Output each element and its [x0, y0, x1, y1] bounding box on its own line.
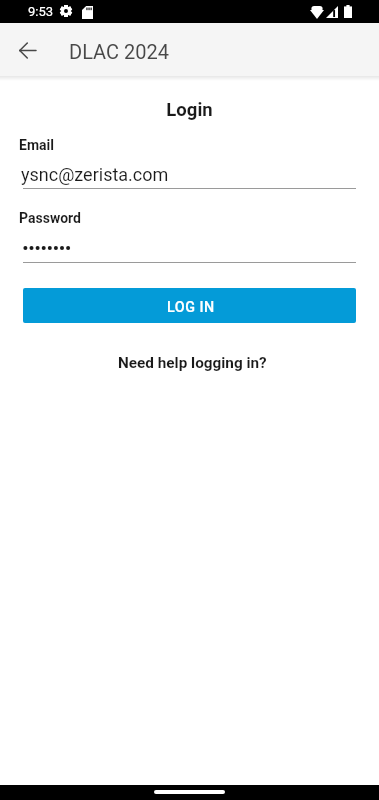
button[interactable]: Need help logging in?	[110, 350, 275, 376]
staticText: LOG IN	[167, 299, 215, 316]
button[interactable]: Back	[0, 23, 54, 76]
staticText: ysnc@zerista.com	[21, 164, 169, 185]
staticText: Login	[0, 99, 379, 121]
staticText: Password	[19, 210, 81, 226]
staticText: Email	[19, 137, 54, 153]
button[interactable]: ysnc@zerista.com	[23, 160, 356, 189]
button[interactable]: Password	[23, 234, 356, 263]
staticText: Need help logging in?	[118, 354, 267, 372]
staticText: DLAC 2024	[69, 40, 169, 63]
button[interactable]: LOG IN	[23, 288, 356, 323]
staticText: 9:53	[28, 4, 54, 19]
